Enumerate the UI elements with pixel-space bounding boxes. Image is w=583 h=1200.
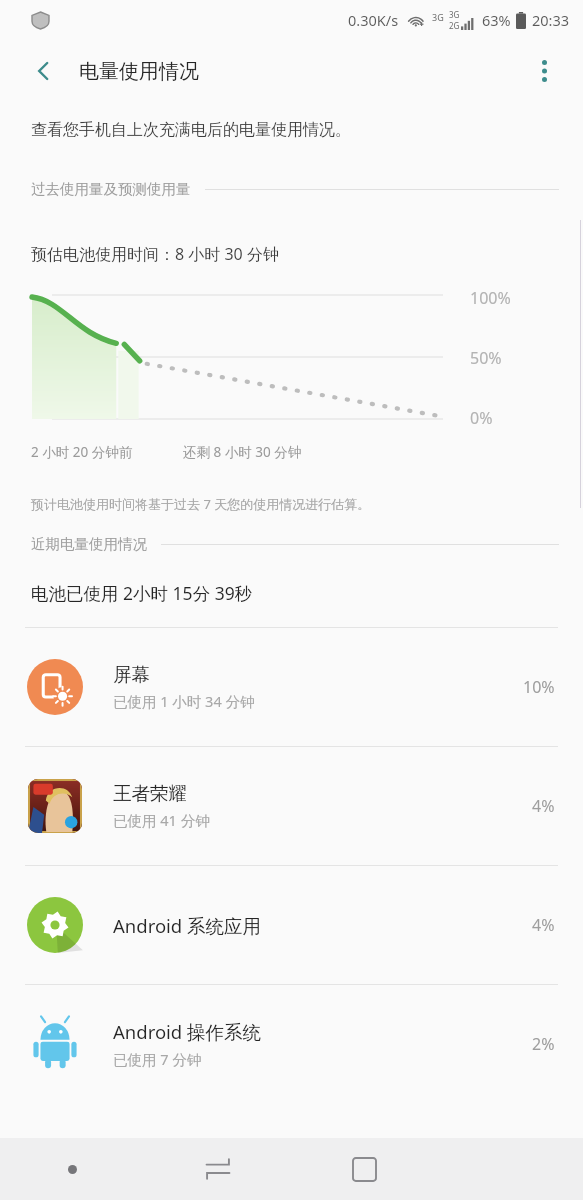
staticText: Android 操作系统 <box>113 1019 262 1044</box>
staticText: 电量使用情况 <box>79 59 199 84</box>
staticText: 预估电池使用时间：8 小时 30 分钟 <box>31 243 279 265</box>
staticText: 查看您手机自上次充满电后的电量使用情况。 <box>31 120 351 140</box>
staticText: 20:33 <box>532 10 570 30</box>
button[interactable]: Menu <box>0 1138 145 1200</box>
staticText: 4% <box>532 914 555 936</box>
button[interactable]: Android 操作系统 <box>0 985 583 1103</box>
button[interactable]: Back <box>145 1138 291 1200</box>
staticText: 已使用 1 小时 34 分钟 <box>113 691 255 711</box>
button[interactable]: Android 系统应用 <box>0 866 583 984</box>
staticText: 100% <box>470 287 511 309</box>
staticText: 0.30K/s <box>348 10 399 30</box>
button[interactable]: More options <box>521 48 567 94</box>
staticText: 3G <box>432 11 444 23</box>
staticText: 2% <box>532 1033 555 1055</box>
staticText: 50% <box>470 347 502 369</box>
staticText: 2G <box>449 20 460 31</box>
staticText: 已使用 41 分钟 <box>113 810 210 830</box>
button[interactable]: Back <box>22 49 66 93</box>
staticText: 0% <box>470 407 493 429</box>
staticText: 电池已使用 2小时 15分 39秒 <box>31 581 253 605</box>
staticText: 3G <box>449 9 460 20</box>
staticText: 预计电池使用时间将基于过去 7 天您的使用情况进行估算。 <box>31 495 371 513</box>
button[interactable]: 王者荣耀 <box>0 747 583 865</box>
staticText: 10% <box>523 676 555 698</box>
staticText: 屏幕 <box>113 663 150 686</box>
staticText: 已使用 7 分钟 <box>113 1049 202 1069</box>
staticText: 63% <box>482 10 511 30</box>
button[interactable]: Recent apps <box>291 1138 437 1200</box>
staticText: 近期电量使用情况 <box>31 535 147 553</box>
staticText: 王者荣耀 <box>113 782 187 805</box>
staticText: 4% <box>532 795 555 817</box>
staticText: 过去使用量及预测使用量 <box>31 180 191 198</box>
staticText: Android 系统应用 <box>113 913 262 938</box>
staticText: 还剩 8 小时 30 分钟 <box>183 443 302 461</box>
staticText: 2 小时 20 分钟前 <box>31 443 133 461</box>
button[interactable]: 屏幕 <box>0 628 583 746</box>
